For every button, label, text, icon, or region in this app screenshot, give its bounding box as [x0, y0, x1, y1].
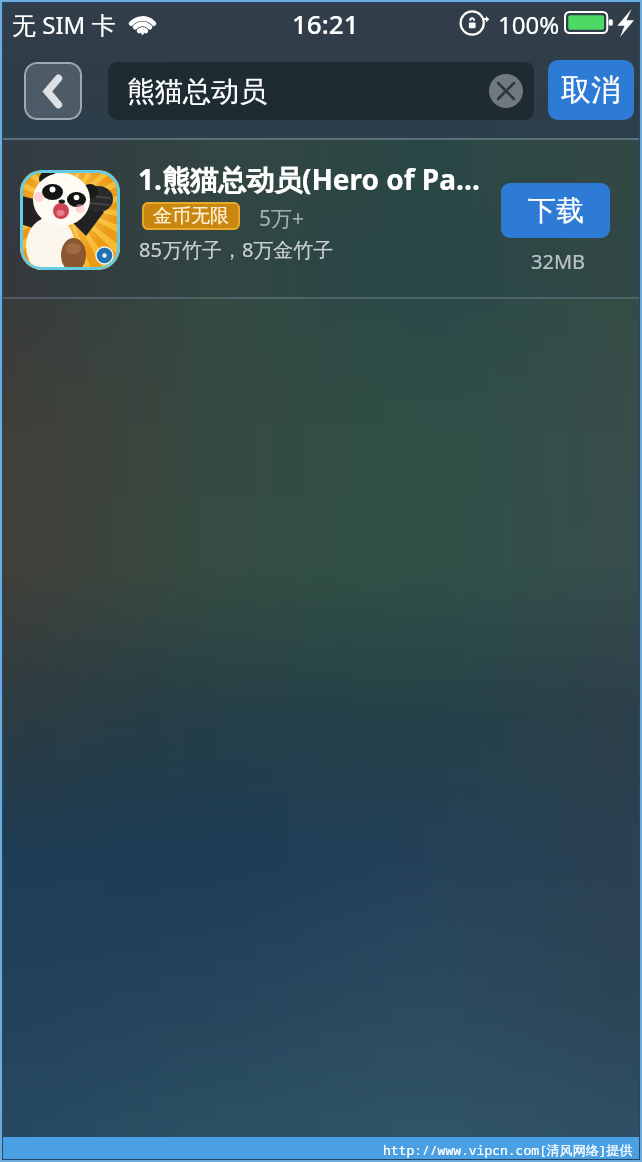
staticText: 无 SIM 卡 [12, 8, 116, 41]
staticText: 16:21 [292, 6, 359, 41]
staticText: 下载 [528, 193, 584, 228]
button[interactable]: Back [24, 62, 82, 120]
button[interactable]: 取消 [548, 60, 634, 120]
staticText: 熊猫总动员 [127, 74, 267, 109]
staticText: 32MB [531, 248, 586, 275]
staticText: 取消 [561, 71, 621, 109]
button[interactable]: 下载 [501, 183, 610, 238]
staticText: 85万竹子，8万金竹子 [139, 236, 334, 263]
staticText: 1.熊猫总动员(Hero of Pa… [138, 160, 480, 198]
staticText: http://www.vipcn.com[清风网络]提供 [383, 1141, 633, 1159]
button[interactable]: Clear search [489, 74, 523, 108]
button[interactable]: App icon [20, 170, 120, 270]
staticText: 5万+ [259, 204, 305, 233]
staticText: 100% [498, 8, 560, 41]
staticText: 金币无限 [153, 204, 229, 228]
button[interactable]: 熊猫总动员 [108, 62, 534, 120]
